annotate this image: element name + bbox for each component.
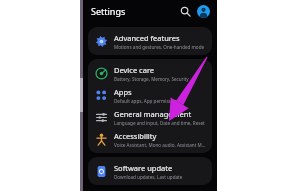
staticText: Battery, Storage, Memory, Security xyxy=(114,76,189,82)
staticText: Default apps, App permissions xyxy=(114,98,180,104)
staticText: Software update xyxy=(114,163,173,173)
staticText: Accessibility xyxy=(114,131,157,141)
staticText: Voice Assistant, Mono audio, Assistant M… xyxy=(114,142,207,148)
staticText: Motions and gestures, One-handed mode xyxy=(114,44,205,50)
staticText: Advanced features xyxy=(114,33,180,43)
staticText: Settings xyxy=(91,5,126,17)
staticText: General management xyxy=(114,109,192,119)
button[interactable]: Advanced features xyxy=(88,30,212,52)
staticText: Download updates, Last update xyxy=(114,174,183,180)
button[interactable]: General management xyxy=(88,106,212,128)
button[interactable]: Account xyxy=(197,5,210,18)
button[interactable]: Software update xyxy=(88,160,212,182)
button[interactable]: Device care xyxy=(88,62,212,84)
staticText: Device care xyxy=(114,65,155,75)
staticText: Language and input, Date and time, Reset xyxy=(114,120,205,126)
button[interactable]: Accessibility xyxy=(88,128,212,150)
staticText: Apps xyxy=(114,87,132,97)
button[interactable]: Search xyxy=(178,4,192,18)
button[interactable]: Apps xyxy=(88,84,212,106)
